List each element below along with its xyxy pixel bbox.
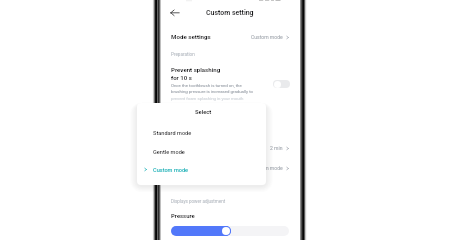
button[interactable]: Gentle mode [137, 144, 266, 162]
staticText: Mode settings [171, 33, 211, 40]
staticText: Custom mode [153, 167, 189, 174]
staticText: Prevent splashing for 10 s [171, 66, 221, 81]
button[interactable]: Standard mode [137, 125, 266, 143]
button[interactable]: 2 min [161, 141, 300, 155]
staticText: Custom mode [251, 34, 283, 40]
button[interactable]: Mode settings [161, 30, 300, 44]
button[interactable]: Back [168, 7, 180, 19]
staticText: Displays power adjustment [171, 199, 226, 204]
staticText: Preparation [171, 52, 195, 57]
staticText: Once the toothbrush is turned on, the br… [171, 83, 253, 94]
staticText: Gentle mode [153, 149, 185, 156]
staticText: Pressure [171, 213, 195, 220]
staticText: Custom mode [251, 165, 283, 171]
staticText: 2 min [270, 145, 283, 151]
button[interactable]: Custom mode [137, 162, 266, 180]
button[interactable]: Custom mode [161, 161, 300, 175]
staticText: Select [195, 109, 212, 116]
staticText: prevent foam splashing in your mouth [171, 96, 244, 101]
staticText: Custom setting [206, 9, 254, 17]
staticText: Standard mode [153, 130, 192, 137]
button[interactable]: Prevent splashing toggle [273, 80, 290, 88]
button[interactable]: Pressure slider [171, 226, 289, 236]
